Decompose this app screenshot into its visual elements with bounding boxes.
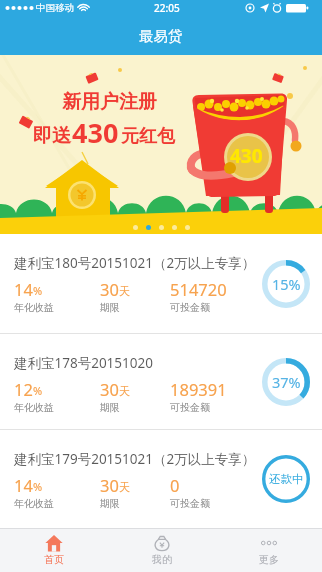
- staticText: 元红包: [121, 125, 175, 148]
- staticText: 即送: [33, 124, 71, 148]
- staticText: 期限: [100, 301, 120, 314]
- staticText: 30: [100, 474, 119, 496]
- staticText: 可投金额: [170, 301, 210, 314]
- button[interactable]: 建利宝180号20151021（2万以上专享）: [0, 234, 322, 333]
- staticText: 30: [100, 278, 119, 300]
- staticText: 430: [230, 143, 263, 169]
- button[interactable]: 我的: [108, 528, 215, 572]
- staticText: 还款中: [269, 472, 304, 486]
- staticText: 14: [14, 278, 33, 300]
- button[interactable]: 430: [0, 55, 322, 234]
- staticText: 22:05: [154, 1, 180, 15]
- staticText: %: [33, 383, 43, 398]
- staticText: 189391: [170, 378, 227, 400]
- staticText: 天: [119, 284, 130, 298]
- staticText: 天: [119, 384, 130, 398]
- staticText: 可投金额: [170, 401, 210, 414]
- staticText: %: [33, 479, 43, 494]
- staticText: 12: [14, 378, 33, 400]
- staticText: 建利宝180号20151021（2万以上专享）: [14, 254, 256, 272]
- staticText: 15%: [272, 274, 301, 294]
- staticText: 更多: [259, 553, 279, 566]
- button[interactable]: 建利宝178号20151020: [0, 334, 322, 429]
- staticText: 年化收益: [14, 301, 54, 314]
- staticText: %: [33, 283, 43, 298]
- staticText: 年化收益: [14, 401, 54, 414]
- staticText: 期限: [100, 497, 120, 510]
- staticText: 年化收益: [14, 497, 54, 510]
- staticText: 14: [14, 474, 33, 496]
- staticText: 30: [100, 378, 119, 400]
- staticText: 首页: [44, 553, 64, 566]
- staticText: 514720: [170, 278, 227, 300]
- button[interactable]: 更多: [215, 528, 322, 572]
- button[interactable]: 首页: [0, 528, 108, 572]
- staticText: 0: [170, 474, 180, 496]
- staticText: 我的: [152, 553, 172, 566]
- staticText: 37%: [272, 372, 301, 392]
- staticText: 建利宝178号20151020: [14, 354, 153, 372]
- staticText: 新用户注册: [62, 90, 157, 114]
- staticText: 可投金额: [170, 497, 210, 510]
- staticText: 建利宝179号20151021（2万以上专享）: [14, 450, 256, 468]
- staticText: 天: [119, 480, 130, 494]
- staticText: 期限: [100, 401, 120, 414]
- button[interactable]: 建利宝179号20151021（2万以上专享）: [0, 430, 322, 528]
- staticText: 最易贷: [139, 27, 183, 45]
- staticText: 中国移动: [36, 2, 74, 14]
- staticText: 430: [72, 114, 119, 151]
